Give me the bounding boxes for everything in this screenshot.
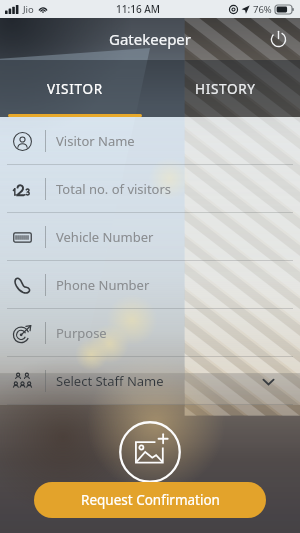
staticText: Jio (23, 3, 34, 16)
button[interactable]: Select Staff Name (0, 357, 300, 405)
staticText: Total no. of visitors (56, 180, 300, 198)
staticText: 11:16 AM (116, 2, 160, 16)
button[interactable]: Vehicle Number (0, 213, 300, 261)
staticText: Visitor Name (56, 132, 300, 150)
staticText: Request Confirmation (81, 491, 220, 509)
staticText: Select Staff Name (56, 372, 261, 390)
button[interactable]: Total no. of visitors (0, 165, 300, 213)
button[interactable]: Purpose (0, 309, 300, 357)
button[interactable]: VISITOR (0, 60, 150, 117)
button[interactable]: Visitor Name (0, 117, 300, 165)
button[interactable]: Add visitor photo (118, 420, 182, 484)
staticText: Purpose (56, 324, 300, 342)
button[interactable]: HISTORY (150, 60, 300, 117)
staticText: HISTORY (195, 80, 256, 98)
staticText: Gatekeeper (109, 29, 192, 49)
staticText: Vehicle Number (56, 228, 300, 246)
staticText: VISITOR (47, 80, 103, 98)
staticText: Phone Number (56, 276, 300, 294)
button[interactable]: Phone Number (0, 261, 300, 309)
staticText: 76% (253, 3, 272, 16)
button[interactable]: Log out (263, 24, 293, 54)
button[interactable]: Request Confirmation (34, 482, 266, 518)
